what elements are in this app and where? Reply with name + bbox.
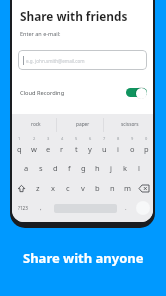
button[interactable]: g bbox=[76, 158, 90, 178]
button[interactable]: 0 bbox=[139, 135, 153, 158]
staticText: 1 bbox=[18, 136, 21, 141]
staticText: 3 bbox=[47, 136, 50, 141]
staticText: 2 bbox=[33, 136, 36, 141]
button[interactable]: f bbox=[62, 158, 76, 178]
button[interactable]: Backspace bbox=[135, 178, 153, 198]
staticText: l bbox=[138, 163, 140, 173]
staticText: q bbox=[17, 144, 22, 154]
button[interactable]: Space bbox=[49, 198, 119, 218]
staticText: Share with anyone bbox=[23, 249, 144, 267]
staticText: e bbox=[46, 144, 51, 154]
staticText: 7 bbox=[103, 136, 106, 141]
staticText: j bbox=[110, 163, 112, 173]
button[interactable]: c bbox=[60, 178, 75, 198]
button[interactable]: Shift bbox=[12, 178, 30, 198]
staticText: 6 bbox=[89, 136, 92, 141]
button[interactable]: z bbox=[30, 178, 45, 198]
staticText: h bbox=[95, 163, 100, 173]
button[interactable]: 9 bbox=[125, 135, 139, 158]
staticText: 5 bbox=[75, 136, 78, 141]
staticText: rock bbox=[31, 121, 41, 128]
button[interactable]: Enter bbox=[133, 198, 153, 218]
button[interactable]: l bbox=[132, 158, 146, 178]
staticText: s bbox=[39, 163, 43, 173]
staticText: z bbox=[36, 183, 40, 193]
button[interactable]: s bbox=[34, 158, 48, 178]
button[interactable]: , bbox=[33, 198, 49, 218]
staticText: , bbox=[40, 204, 42, 212]
button[interactable]: j bbox=[104, 158, 118, 178]
staticText: p bbox=[144, 144, 149, 154]
button[interactable]: paper bbox=[59, 114, 106, 135]
staticText: y bbox=[88, 144, 92, 154]
staticText: Share with friends bbox=[20, 8, 128, 24]
staticText: v bbox=[81, 183, 85, 193]
staticText: o bbox=[130, 144, 135, 154]
staticText: w bbox=[31, 144, 37, 154]
button[interactable]: 6 bbox=[83, 135, 97, 158]
button[interactable]: d bbox=[48, 158, 62, 178]
button[interactable]: scissors bbox=[106, 114, 153, 135]
button[interactable]: a bbox=[19, 158, 34, 178]
button[interactable]: 4 bbox=[55, 135, 69, 158]
button[interactable]: ?123 bbox=[12, 198, 33, 218]
button[interactable]: v bbox=[75, 178, 90, 198]
staticText: d bbox=[53, 163, 58, 173]
staticText: 8 bbox=[117, 136, 120, 141]
staticText: a bbox=[24, 163, 29, 173]
button[interactable]: k bbox=[118, 158, 132, 178]
staticText: u bbox=[102, 144, 107, 154]
staticText: paper bbox=[76, 121, 90, 128]
button[interactable]: e.g. john.smith@email.com bbox=[18, 50, 147, 70]
button[interactable]: Cloud Recording bbox=[12, 85, 153, 100]
button[interactable]: rock bbox=[12, 114, 59, 135]
staticText: k bbox=[123, 163, 128, 173]
staticText: n bbox=[110, 183, 115, 193]
staticText: g bbox=[81, 163, 86, 173]
button[interactable]: m bbox=[120, 178, 135, 198]
staticText: scissors bbox=[121, 121, 139, 128]
staticText: Enter an e-mail: bbox=[20, 30, 61, 37]
staticText: b bbox=[95, 183, 100, 193]
staticText: t bbox=[75, 144, 78, 154]
button[interactable]: x bbox=[45, 178, 60, 198]
staticText: 9 bbox=[131, 136, 134, 141]
staticText: c bbox=[66, 183, 70, 193]
staticText: 4 bbox=[61, 136, 64, 141]
button[interactable]: b bbox=[90, 178, 105, 198]
staticText: f bbox=[68, 163, 71, 173]
button[interactable]: n bbox=[105, 178, 120, 198]
staticText: e.g. john.smith@email.com bbox=[26, 58, 85, 64]
button[interactable]: 1 bbox=[12, 135, 27, 158]
staticText: m bbox=[124, 183, 132, 193]
staticText: x bbox=[51, 183, 55, 193]
staticText: . bbox=[125, 204, 127, 212]
button[interactable]: 8 bbox=[111, 135, 125, 158]
staticText: Cloud Recording bbox=[20, 89, 65, 97]
staticText: ?123 bbox=[18, 205, 28, 211]
button[interactable]: 5 bbox=[69, 135, 83, 158]
button[interactable]: h bbox=[90, 158, 104, 178]
staticText: i bbox=[117, 144, 119, 154]
button[interactable]: 7 bbox=[97, 135, 111, 158]
button[interactable]: 2 bbox=[27, 135, 41, 158]
staticText: 0 bbox=[145, 136, 148, 141]
button[interactable]: 3 bbox=[41, 135, 55, 158]
staticText: r bbox=[60, 144, 64, 154]
